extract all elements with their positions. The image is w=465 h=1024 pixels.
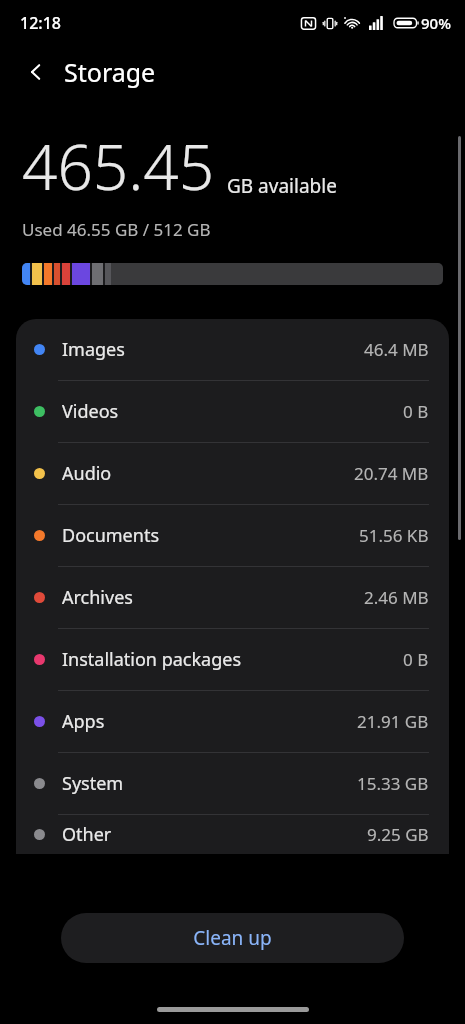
staticText: 465.45 <box>22 124 215 208</box>
staticText: Storage <box>64 55 156 89</box>
staticText: 0 B <box>403 648 429 671</box>
staticText: Documents <box>62 523 359 548</box>
staticText: Used 46.55 GB / 512 GB <box>22 218 211 241</box>
staticText: Archives <box>62 585 364 610</box>
staticText: 21.91 GB <box>357 710 429 733</box>
staticText: 51.56 KB <box>359 524 429 547</box>
staticText: GB available <box>227 173 337 199</box>
staticText: 46.4 MB <box>364 338 429 361</box>
staticText: Apps <box>62 709 357 734</box>
button[interactable]: Clean up <box>61 913 404 963</box>
staticText: 12:18 <box>20 12 61 34</box>
staticText: System <box>62 771 357 796</box>
staticText: 2.46 MB <box>364 586 429 609</box>
button[interactable]: Apps <box>16 691 449 752</box>
button[interactable]: Other <box>16 815 449 854</box>
staticText: Clean up <box>193 925 272 951</box>
staticText: 15.33 GB <box>357 772 429 795</box>
staticText: 90% <box>421 13 451 33</box>
button[interactable]: Back <box>14 50 58 94</box>
button[interactable]: Archives <box>16 567 449 628</box>
staticText: Images <box>62 337 364 362</box>
staticText: Other <box>62 822 367 847</box>
button[interactable]: Installation packages <box>16 629 449 690</box>
staticText: Videos <box>62 399 403 424</box>
button[interactable]: Audio <box>16 443 449 504</box>
staticText: 0 B <box>403 400 429 423</box>
button[interactable]: Documents <box>16 505 449 566</box>
staticText: Audio <box>62 461 354 486</box>
button[interactable]: System <box>16 753 449 814</box>
button[interactable]: Videos <box>16 381 449 442</box>
staticText: 20.74 MB <box>354 462 429 485</box>
button[interactable]: Images <box>16 319 449 380</box>
staticText: 9.25 GB <box>367 823 429 846</box>
staticText: Installation packages <box>62 647 403 672</box>
